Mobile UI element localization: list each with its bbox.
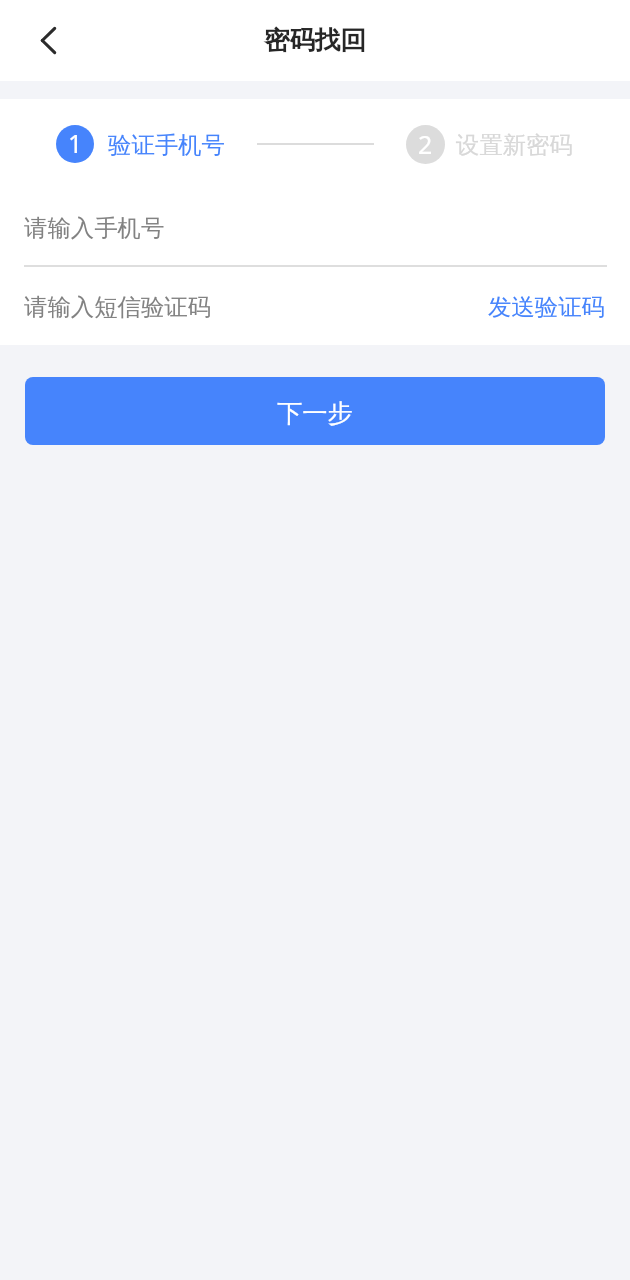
button[interactable]: 下一步 (25, 377, 605, 445)
button[interactable]: 请输入手机号 (0, 189, 630, 265)
staticText: 下一步 (277, 398, 353, 430)
staticText: 设置新密码 (456, 130, 573, 159)
button[interactable]: 发送验证码 (488, 267, 605, 345)
button[interactable]: Back (24, 17, 72, 65)
staticText: 密码找回 (264, 24, 366, 56)
button[interactable]: 2 (406, 125, 573, 164)
staticText: 2 (418, 127, 433, 161)
staticText: 请输入手机号 (24, 213, 165, 242)
button[interactable]: 1 (56, 125, 225, 163)
staticText: 请输入短信验证码 (24, 292, 212, 321)
staticText: 验证手机号 (108, 130, 225, 159)
button[interactable]: 请输入短信验证码 (24, 267, 488, 345)
staticText: 1 (68, 126, 83, 160)
staticText: 发送验证码 (488, 292, 605, 321)
